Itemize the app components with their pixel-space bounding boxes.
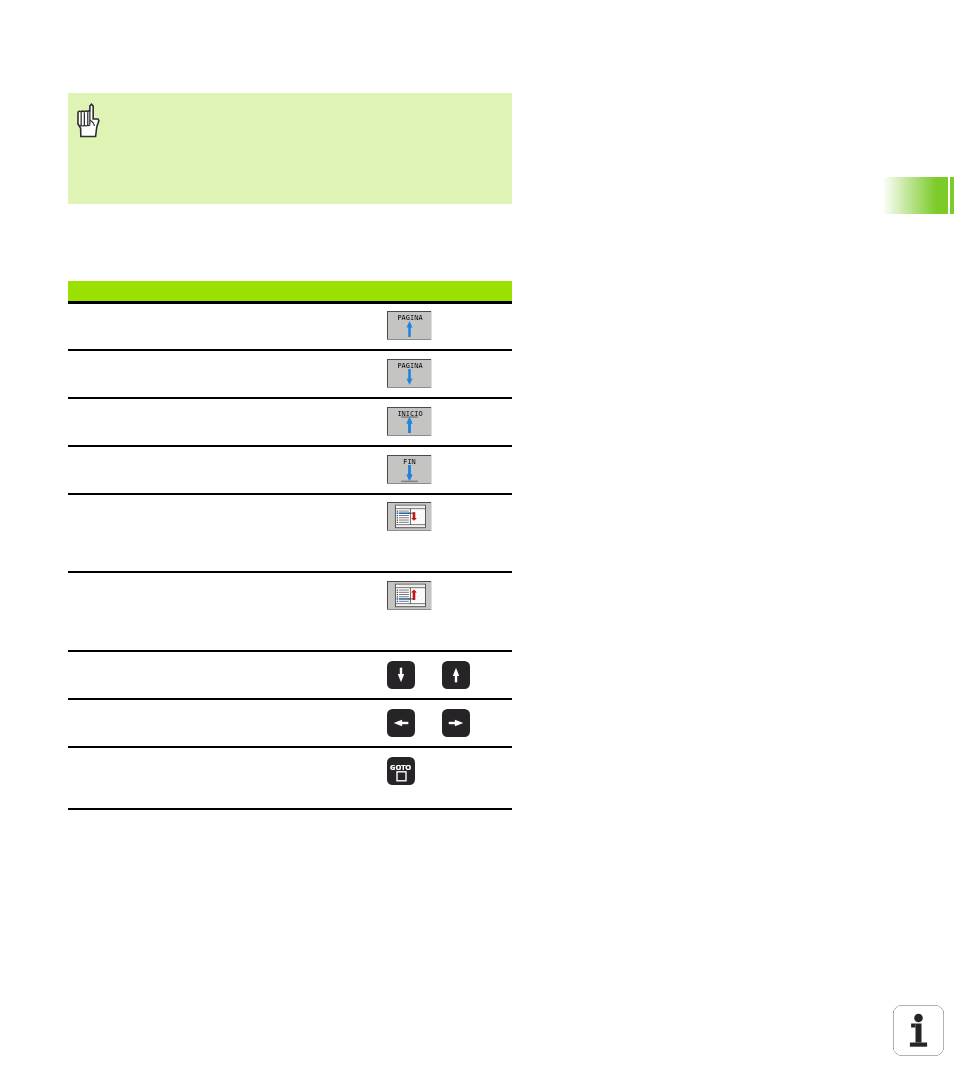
button[interactable]: PAGINA [387,359,432,388]
staticText: INICIO [397,409,423,419]
button[interactable]: INICIO [387,407,432,436]
button[interactable]: GOTO [387,757,415,785]
staticText: FIN [403,457,416,467]
button[interactable]: PAGINA [387,311,432,340]
button[interactable]: FIN [387,455,432,484]
staticText: GOTO [390,762,412,772]
button[interactable]: Information [893,1005,944,1056]
staticText: PAGINA [397,313,423,323]
button[interactable]: Arrow up [442,661,470,689]
button[interactable]: Arrow down [387,661,415,689]
button[interactable]: Arrow left [387,709,415,737]
staticText: PAGINA [397,361,423,371]
button[interactable]: Next block [387,502,432,531]
button[interactable]: Arrow right [442,709,470,737]
button[interactable]: Previous block [387,581,432,610]
